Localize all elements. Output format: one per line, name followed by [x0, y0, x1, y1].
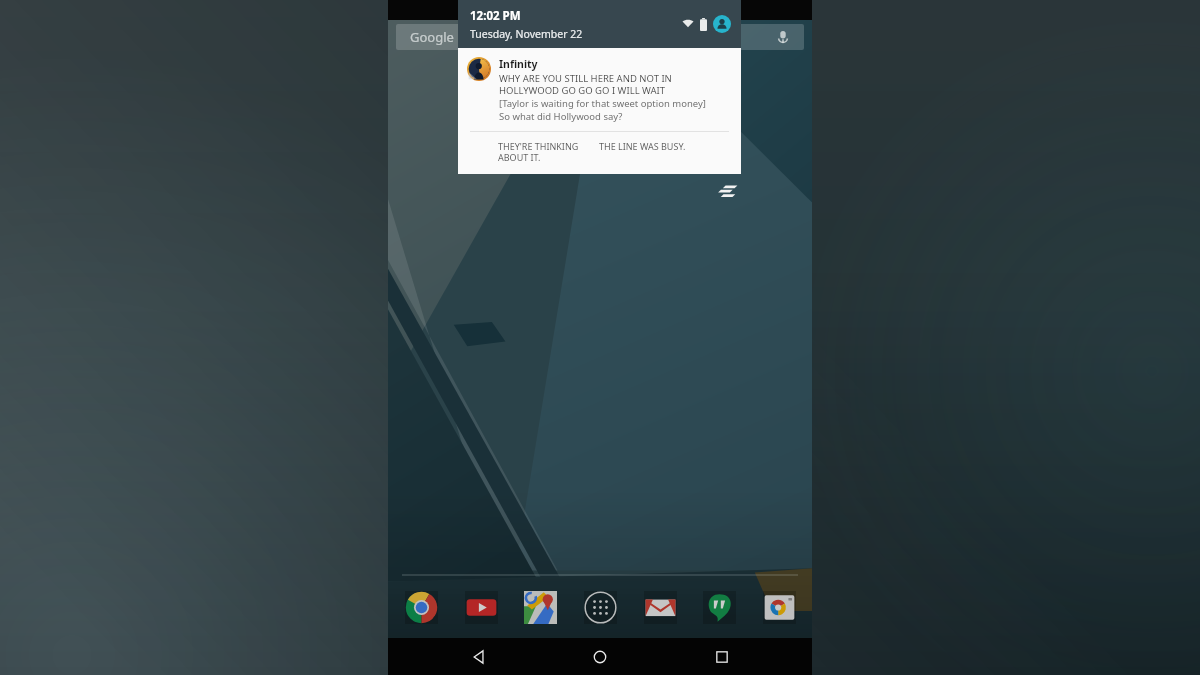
- staticText: [Taylor is waiting for that sweet option…: [499, 97, 706, 110]
- button[interactable]: Gmail: [637, 582, 683, 632]
- button[interactable]: Back: [448, 638, 510, 675]
- button[interactable]: User account: [713, 15, 731, 33]
- button[interactable]: Infinity: [458, 48, 741, 174]
- button[interactable]: THEY'RE THINKING ABOUT IT.: [498, 140, 595, 164]
- staticText: Tuesday, November 22: [470, 27, 583, 41]
- staticText: Google: [410, 28, 454, 46]
- button[interactable]: Recents: [691, 638, 753, 675]
- button[interactable]: Voice search: [774, 28, 792, 46]
- button[interactable]: THE LINE WAS BUSY.: [599, 140, 735, 152]
- button[interactable]: Google: [396, 24, 804, 50]
- button[interactable]: Chrome: [398, 582, 444, 632]
- staticText: THE LINE WAS BUSY.: [599, 140, 686, 152]
- button[interactable]: Camera: [756, 582, 802, 632]
- button[interactable]: Stack widget: [715, 181, 741, 201]
- button[interactable]: YouTube: [458, 582, 504, 632]
- staticText: THEY'RE THINKING ABOUT IT.: [498, 140, 595, 164]
- button[interactable]: All apps: [577, 582, 623, 632]
- staticText: WHY ARE YOU STILL HERE AND NOT IN HOLLYW…: [499, 72, 672, 97]
- button[interactable]: Hangouts: [696, 582, 742, 632]
- staticText: 12:02 PM: [470, 8, 521, 24]
- button[interactable]: Home: [569, 638, 631, 675]
- staticText: So what did Hollywood say?: [499, 110, 623, 123]
- staticText: Infinity: [499, 57, 538, 71]
- button[interactable]: Maps: [517, 582, 563, 632]
